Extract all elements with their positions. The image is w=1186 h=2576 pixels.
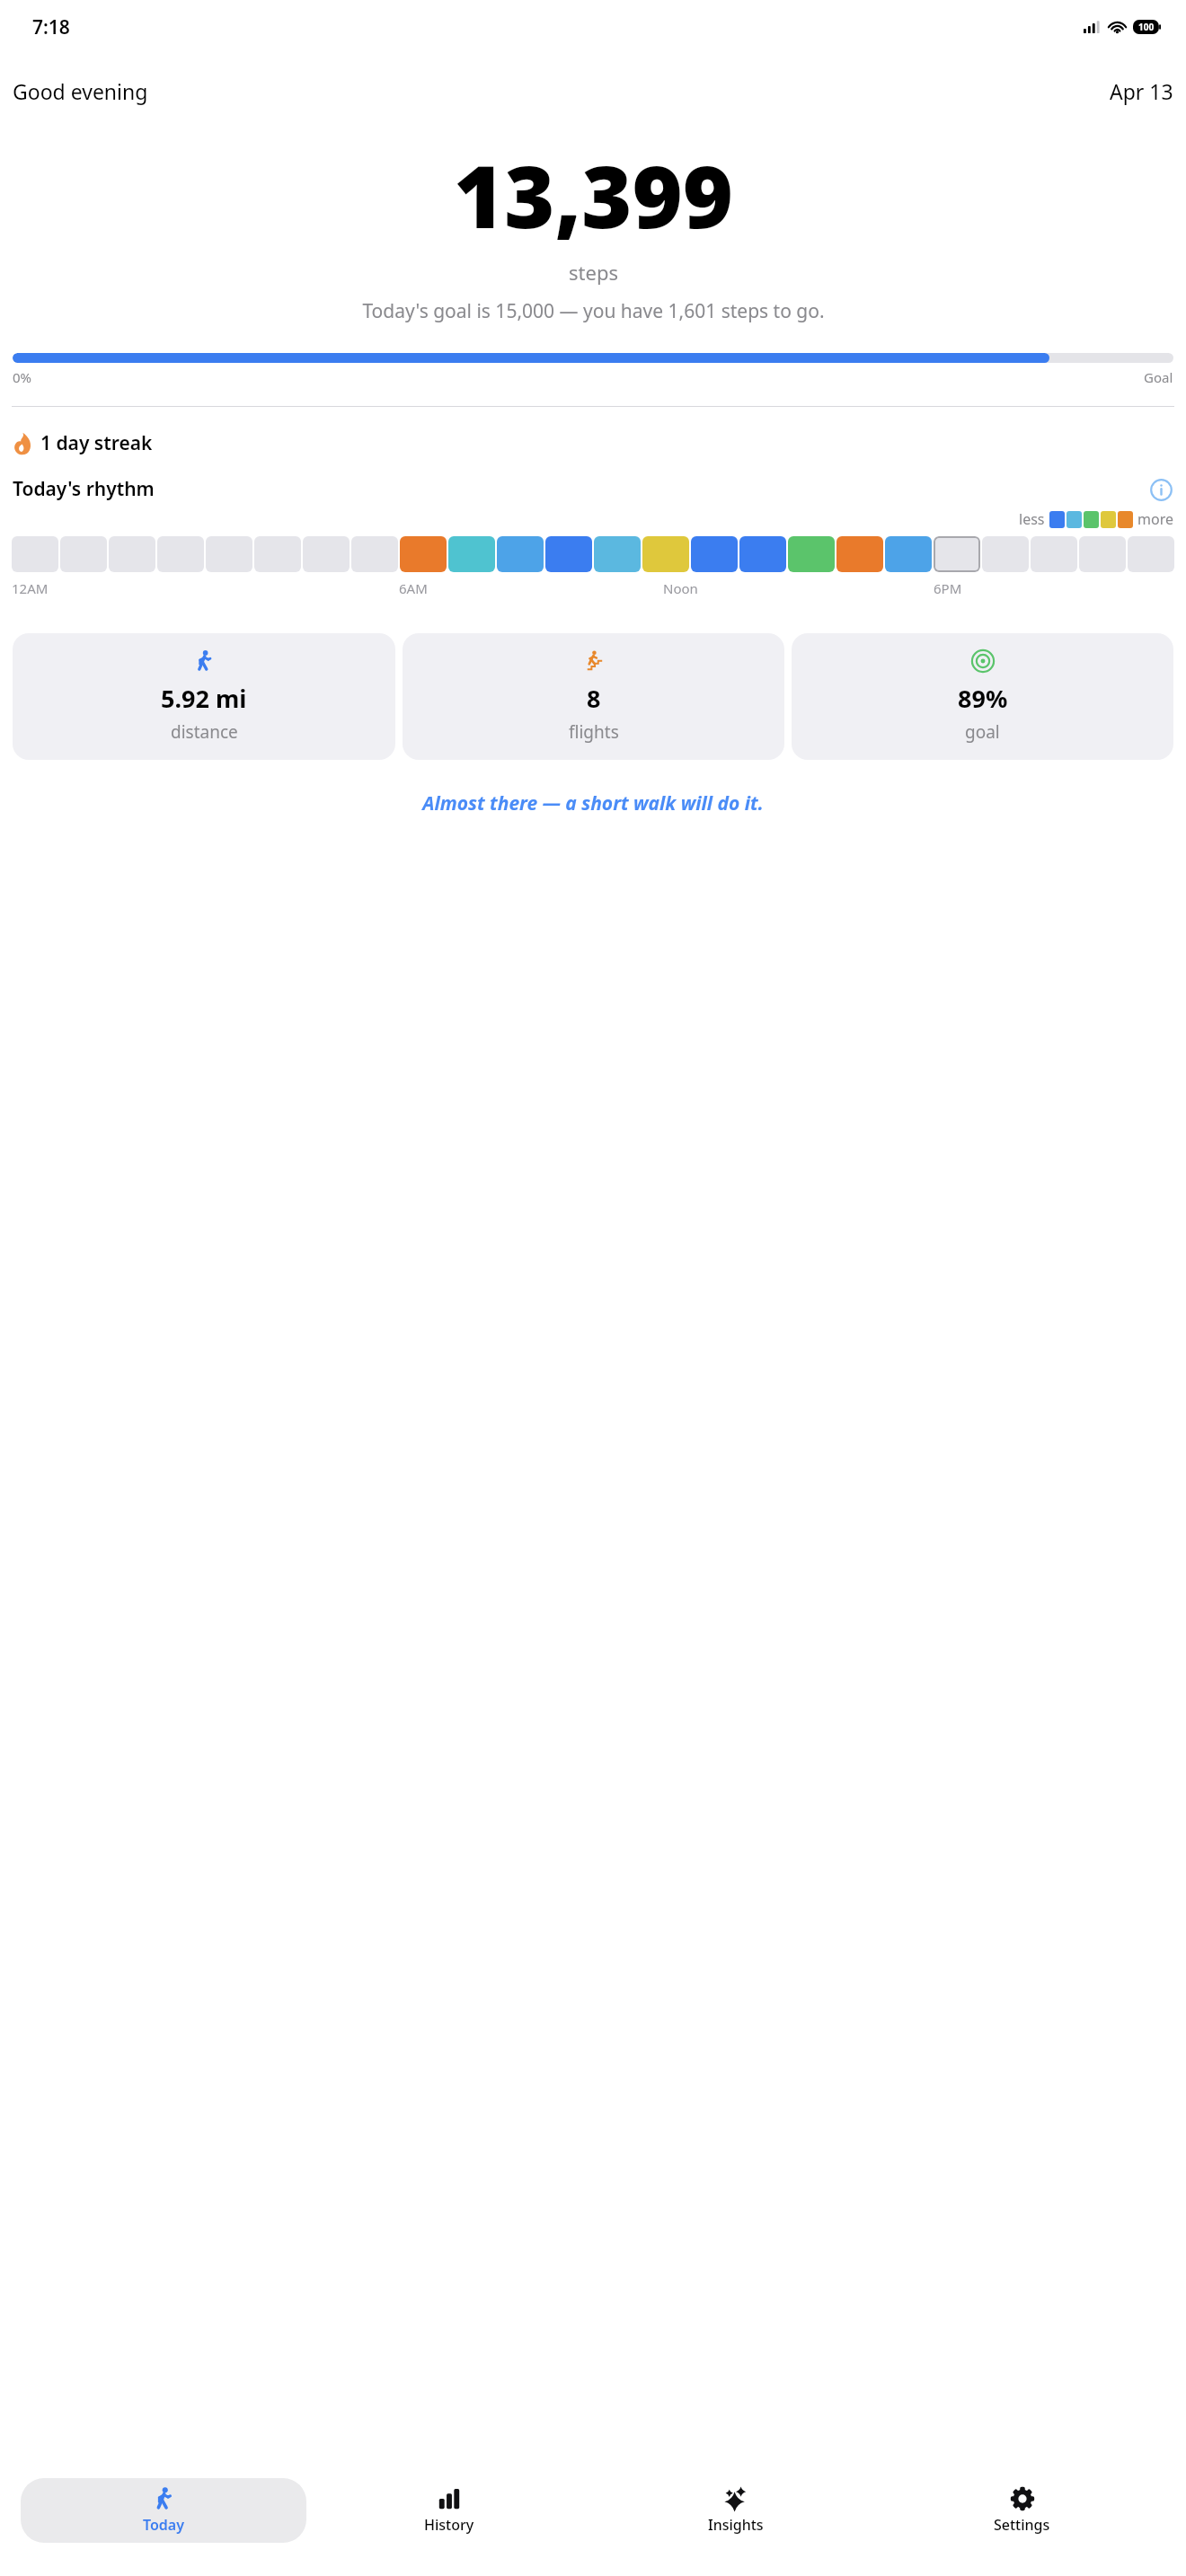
staticText: Today's goal is 15,000 — you have 1,601 … [362, 298, 825, 324]
staticText: 6AM [399, 579, 428, 597]
staticText: Settings [994, 2515, 1050, 2535]
staticText: 1 day streak [40, 430, 153, 456]
staticText: Good evening [13, 77, 148, 105]
staticText: 12AM [12, 579, 49, 597]
staticText: Noon [663, 579, 698, 597]
staticText: more [1137, 509, 1173, 529]
button[interactable]: Insights [592, 2478, 879, 2543]
button[interactable]: Today [21, 2478, 306, 2543]
staticText: goal [965, 720, 1000, 744]
staticText: 8 [587, 682, 601, 715]
staticText: 5.92 mi [161, 682, 247, 715]
staticText: less [1019, 509, 1045, 529]
staticText: Almost there — a short walk will do it. [422, 790, 764, 816]
staticText: Today's rhythm [13, 476, 155, 502]
staticText: 13,399 [454, 136, 733, 253]
staticText: Today [143, 2515, 185, 2535]
button[interactable]: History [306, 2478, 592, 2543]
staticText: 100 [1138, 21, 1155, 33]
staticText: 7:18 [32, 14, 70, 40]
staticText: 6PM [934, 579, 962, 597]
staticText: 89% [958, 682, 1008, 715]
button[interactable]: 89% [792, 633, 1173, 760]
button[interactable]: 5.92 mi [13, 633, 395, 760]
button[interactable]: 8 [403, 633, 784, 760]
staticText: steps [569, 259, 618, 286]
staticText: Insights [708, 2515, 764, 2535]
staticText: Goal [1144, 368, 1173, 386]
staticText: History [424, 2515, 474, 2535]
staticText: 0% [13, 368, 32, 386]
button[interactable]: Settings [879, 2478, 1165, 2543]
button[interactable]: Info about today's rhythm [1148, 477, 1173, 502]
staticText: flights [569, 720, 619, 744]
staticText: distance [171, 720, 238, 744]
staticText: Apr 13 [1110, 77, 1173, 105]
